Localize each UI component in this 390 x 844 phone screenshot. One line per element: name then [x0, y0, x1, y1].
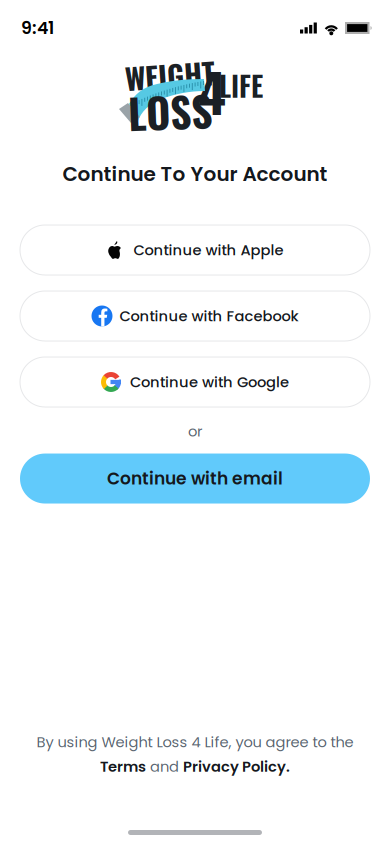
staticText: or — [188, 421, 202, 441]
button[interactable]: Terms — [100, 756, 146, 777]
button[interactable]: Continue with email — [20, 453, 370, 503]
staticText: LOSS — [128, 80, 212, 142]
button[interactable]: Continue with Google — [20, 357, 370, 407]
staticText: Continue with email — [107, 467, 283, 490]
button[interactable]: Continue with Facebook — [20, 291, 370, 341]
staticText: and — [150, 756, 179, 777]
staticText: LIFE — [219, 64, 263, 106]
staticText: WEIGHT — [125, 53, 215, 97]
staticText: By using Weight Loss 4 Life, you agree t… — [36, 732, 353, 752]
staticText: 9:41 — [21, 16, 54, 40]
button[interactable]: Continue with Apple — [20, 225, 370, 275]
staticText: Continue To Your Account — [62, 160, 327, 188]
staticText: Continue with Facebook — [119, 306, 298, 326]
staticText: Terms — [100, 756, 146, 777]
staticText: 4 — [198, 51, 226, 130]
staticText: Continue with Apple — [133, 240, 283, 260]
staticText: Privacy Policy. — [183, 756, 290, 777]
staticText: Continue with Google — [130, 372, 289, 392]
button[interactable]: Privacy Policy. — [183, 756, 290, 777]
